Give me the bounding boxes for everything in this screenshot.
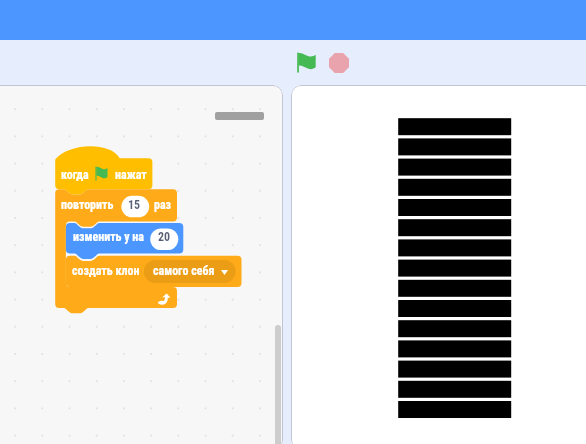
staticText: изменить y на xyxy=(73,230,145,244)
staticText: раз xyxy=(154,198,172,212)
staticText: когда xyxy=(61,168,89,182)
button[interactable]: Stop xyxy=(329,53,349,73)
staticText: повторить xyxy=(61,198,114,212)
staticText: создать клон xyxy=(72,264,140,278)
staticText: самого себя xyxy=(153,264,215,278)
staticText: 15 xyxy=(128,198,141,212)
staticText: нажат xyxy=(115,168,147,182)
button[interactable]: Go xyxy=(295,52,318,73)
staticText: 20 xyxy=(158,230,171,244)
